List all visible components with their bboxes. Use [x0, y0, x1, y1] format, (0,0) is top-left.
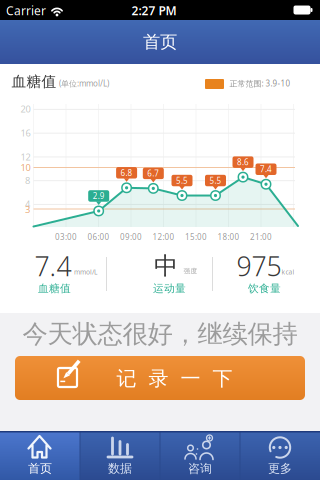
- staticText: 09:00: [120, 232, 142, 242]
- staticText: 10: [20, 161, 30, 174]
- staticText: 6.8: [121, 167, 133, 178]
- staticText: 录: [148, 366, 168, 391]
- staticText: (单位:mmol/L): [59, 78, 109, 89]
- staticText: 18:00: [217, 232, 239, 242]
- button[interactable]: 咨询: [160, 431, 240, 480]
- staticText: 2.9: [93, 191, 105, 201]
- staticText: 03:00: [55, 232, 77, 242]
- staticText: 21:00: [250, 232, 272, 242]
- button[interactable]: 记: [15, 356, 305, 400]
- staticText: mmol/L: [74, 268, 97, 276]
- button[interactable]: 数据: [80, 431, 160, 480]
- staticText: 正常范围: 3.9-10: [229, 78, 290, 89]
- staticText: 12: [20, 151, 30, 163]
- staticText: 强度: [183, 267, 197, 275]
- staticText: 975: [236, 248, 281, 284]
- staticText: 12:00: [152, 232, 174, 242]
- staticText: 血糖值: [38, 282, 71, 295]
- staticText: 6.7: [147, 168, 159, 179]
- staticText: 06:00: [87, 232, 109, 242]
- staticText: 2:27 PM: [131, 2, 176, 18]
- staticText: 首页: [143, 31, 177, 53]
- staticText: 16: [20, 127, 30, 139]
- staticText: 首页: [28, 461, 52, 476]
- staticText: 15:00: [185, 232, 207, 242]
- staticText: 一: [180, 366, 200, 391]
- staticText: Carrier: [6, 2, 46, 18]
- button[interactable]: 首页: [0, 431, 80, 480]
- staticText: 7.4: [260, 164, 272, 174]
- staticText: 运动量: [153, 282, 186, 295]
- staticText: kcal: [281, 268, 294, 276]
- staticText: 8.6: [237, 157, 249, 167]
- staticText: 咨询: [188, 461, 212, 476]
- staticText: 4: [25, 198, 30, 210]
- staticText: 8: [25, 174, 30, 187]
- staticText: 数据: [108, 461, 132, 476]
- staticText: 3: [25, 203, 30, 216]
- staticText: 5.5: [209, 175, 221, 186]
- staticText: 记: [116, 366, 136, 391]
- staticText: 饮食量: [248, 282, 281, 295]
- staticText: 血糖值: [11, 72, 56, 90]
- staticText: 更多: [268, 461, 292, 476]
- staticText: 7.4: [34, 248, 71, 284]
- staticText: 5.5: [176, 175, 188, 186]
- staticText: 中: [154, 251, 178, 281]
- staticText: 今天状态很好，继续保持: [22, 318, 297, 349]
- staticText: 下: [212, 366, 232, 391]
- staticText: 20: [20, 103, 30, 115]
- button[interactable]: 更多: [240, 431, 320, 480]
